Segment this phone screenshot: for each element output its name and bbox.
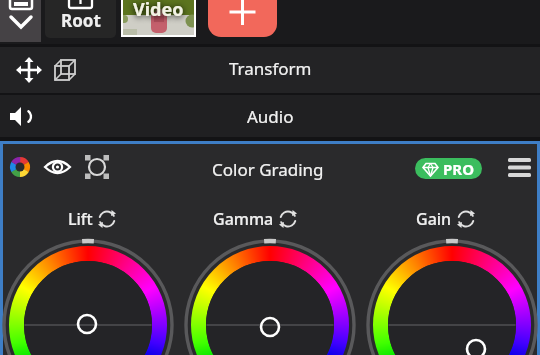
staticText: PRO [443,159,475,179]
staticText: Video [133,0,184,22]
button[interactable] [0,0,41,42]
button[interactable]: Audio [0,95,540,137]
button[interactable]: PRO [415,158,482,179]
staticText: Lift [68,208,93,230]
button[interactable] [7,154,33,180]
staticText: Audio [247,105,294,128]
button[interactable]: Gain [386,206,506,232]
staticText: Transform [229,57,312,80]
staticText: Color Grading [212,158,324,181]
button[interactable]: Video [121,0,196,37]
staticText: Root [61,9,101,32]
button[interactable]: Transform [0,47,540,93]
staticText: Gain [416,208,452,230]
staticText: Gamma [213,208,274,230]
button[interactable] [83,154,113,182]
button[interactable]: Gamma [195,206,315,232]
button[interactable]: Root [45,0,116,38]
button[interactable] [208,0,277,37]
button[interactable]: Lift [32,206,152,232]
button[interactable] [44,156,73,178]
button[interactable] [504,154,536,182]
